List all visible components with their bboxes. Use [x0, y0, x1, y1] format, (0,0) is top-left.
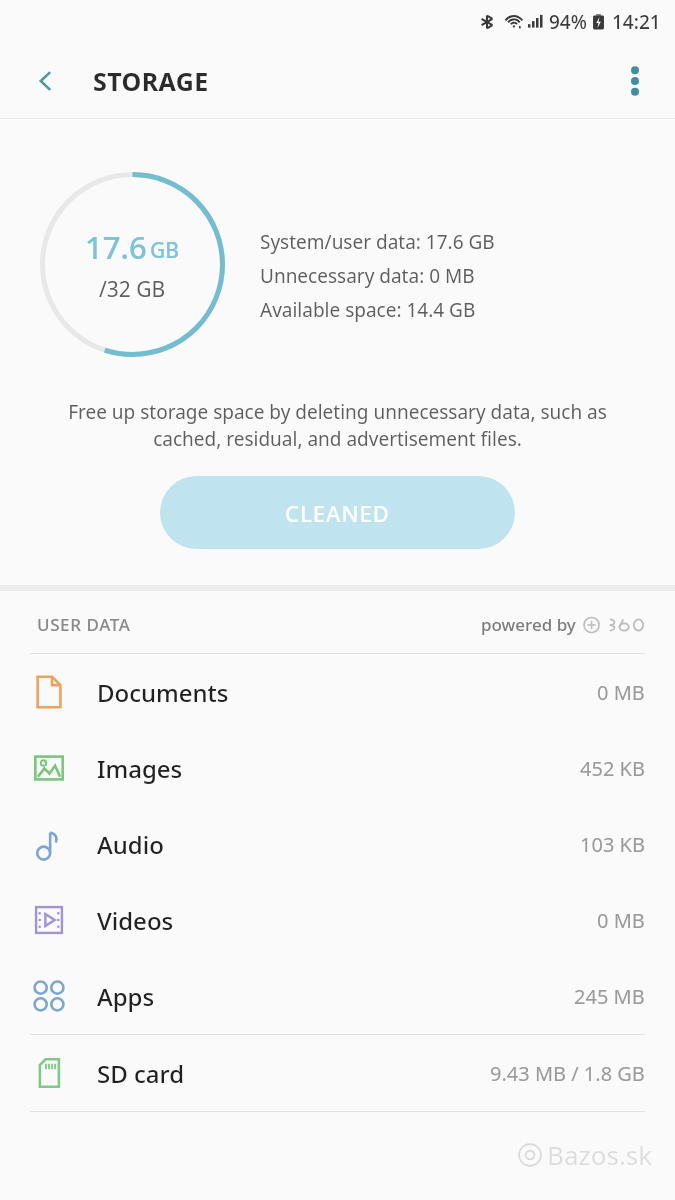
button[interactable]: Documents — [0, 654, 675, 730]
staticText: CLEANED — [285, 498, 390, 528]
staticText: 452 KB — [580, 755, 645, 782]
staticText: Free up storage space by deleting unnece… — [68, 399, 607, 452]
staticText: Audio — [97, 828, 164, 861]
staticText: 17.6 — [85, 226, 147, 268]
button[interactable]: More options — [609, 55, 661, 107]
staticText: GB — [150, 236, 180, 265]
staticText: Videos — [97, 904, 174, 937]
staticText: Images — [97, 752, 183, 785]
button[interactable]: CLEANED — [160, 476, 515, 549]
button[interactable]: Images — [0, 730, 675, 806]
button[interactable]: Audio — [0, 806, 675, 882]
staticText: Available space: 14.4 GB — [260, 297, 476, 323]
staticText: SD card — [97, 1057, 185, 1090]
staticText: Bazos.sk — [547, 1137, 653, 1172]
staticText: 103 KB — [580, 831, 645, 858]
staticText: System/user data: 17.6 GB — [260, 229, 495, 255]
staticText: 9.43 MB / 1.8 GB — [490, 1060, 645, 1087]
staticText: 0 MB — [597, 679, 645, 706]
staticText: STORAGE — [93, 64, 209, 98]
staticText: /32 GB — [99, 275, 166, 304]
button[interactable]: Videos — [0, 882, 675, 958]
staticText: USER DATA — [37, 613, 131, 636]
button[interactable]: SD card — [0, 1035, 675, 1111]
staticText: 14:21 — [612, 9, 661, 35]
staticText: 245 MB — [574, 983, 645, 1010]
button[interactable]: Back — [22, 57, 70, 105]
staticText: Unnecessary data: 0 MB — [260, 263, 475, 289]
staticText: 0 MB — [597, 907, 645, 934]
staticText: 94% — [549, 9, 587, 35]
staticText: Documents — [97, 676, 229, 709]
staticText: Apps — [97, 980, 155, 1013]
button[interactable]: Apps — [0, 958, 675, 1034]
staticText: powered by — [481, 613, 576, 636]
